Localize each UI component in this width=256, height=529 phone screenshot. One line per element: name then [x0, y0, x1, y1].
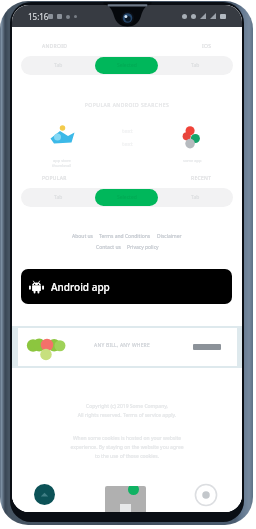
staticText: Tab [54, 62, 63, 69]
staticText: thumbnail [52, 163, 72, 168]
staticText: Terms and Conditions [99, 233, 151, 240]
staticText: Tab [191, 194, 200, 201]
staticText: Tab [191, 62, 200, 69]
staticText: Selected [117, 194, 137, 201]
staticText: About us [72, 233, 93, 240]
staticText: When some cookies is hosted on your webs… [38, 435, 216, 460]
button[interactable]: Play store [173, 124, 211, 163]
staticText: Contact us [96, 244, 121, 251]
button[interactable]: Selected [95, 57, 158, 74]
button[interactable]: ANY BILL, ANY WHERE [18, 328, 237, 366]
button[interactable]: Selected [95, 189, 158, 206]
button[interactable]: Android app [21, 269, 232, 304]
staticText: ANDROID [42, 43, 68, 50]
staticText: Selected [117, 62, 137, 69]
staticText: POPULAR [42, 175, 67, 182]
staticText: text [122, 140, 133, 148]
staticText: 15:16 [28, 11, 49, 22]
staticText: ANY BILL, ANY WHERE [94, 342, 150, 349]
staticText: POPULAR ANDROID SEARCHES [12, 102, 242, 109]
button[interactable]: Back [34, 484, 55, 505]
staticText: Privacy policy [127, 244, 159, 251]
staticText: RECENT [191, 175, 212, 182]
staticText: text [122, 127, 133, 135]
button[interactable]: Home [105, 486, 146, 512]
button[interactable]: Recent apps [195, 484, 217, 506]
staticText: Disclaimer [157, 233, 182, 240]
staticText: Android app [51, 280, 110, 294]
staticText: Copyright (c) 2019 Some Company, All rig… [38, 403, 216, 419]
staticText: Tab [54, 194, 63, 201]
staticText: IOS [202, 43, 212, 50]
staticText: some app [183, 158, 202, 163]
staticText: app store [53, 158, 71, 163]
button[interactable]: App store [43, 124, 81, 168]
